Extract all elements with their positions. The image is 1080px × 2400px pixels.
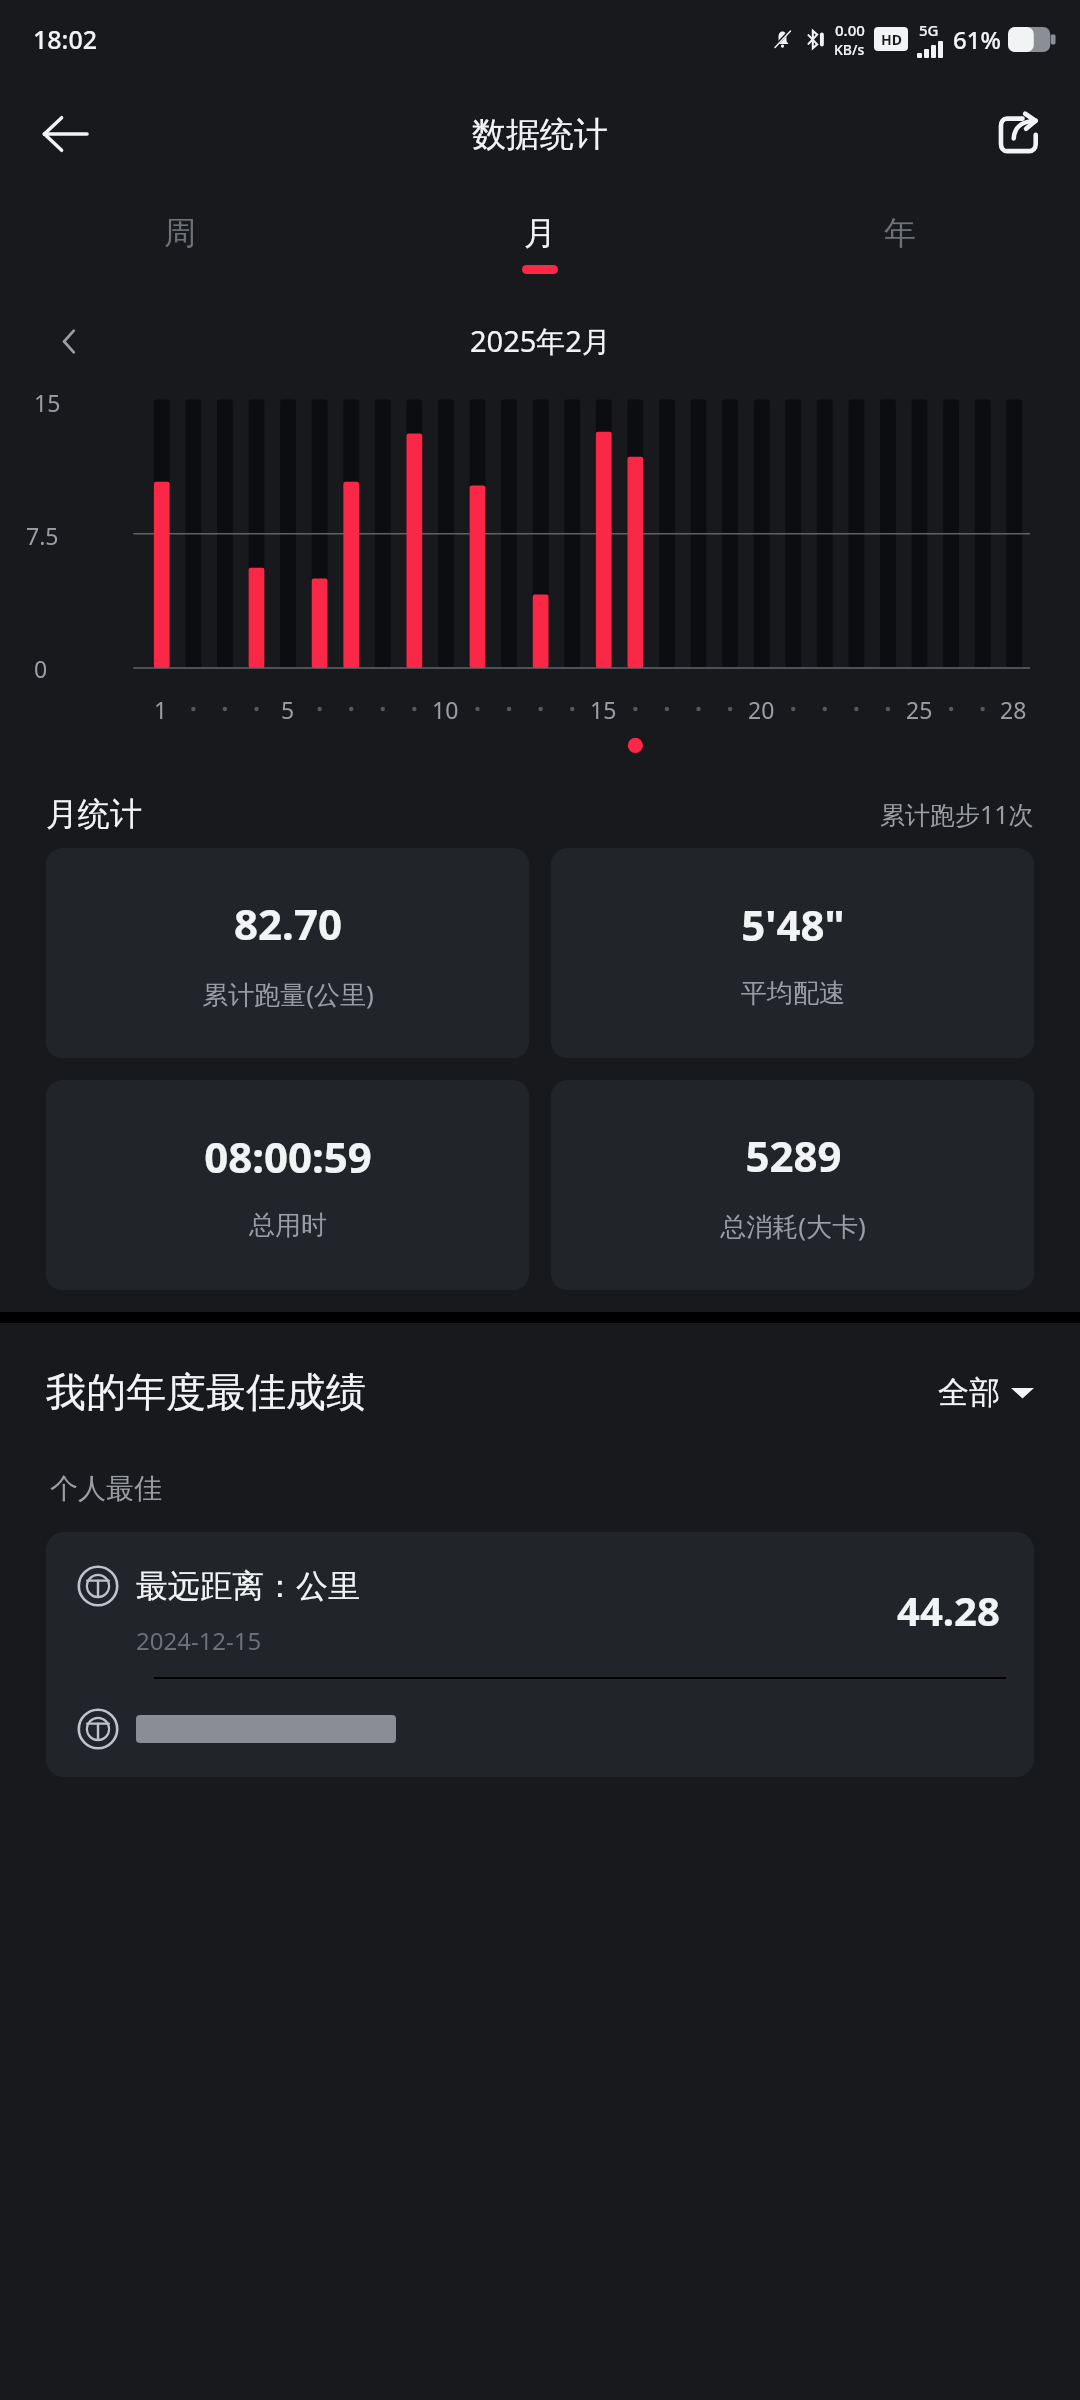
staticText: 5G: [919, 20, 939, 40]
staticText: 数据统计: [472, 113, 608, 156]
staticText: 44.28: [897, 1583, 1000, 1637]
staticText: 累计跑步11次: [880, 797, 1034, 831]
staticText: 15: [590, 694, 617, 725]
staticText: 2024-12-15: [136, 1624, 262, 1657]
staticText: 月: [524, 213, 556, 253]
staticText: 个人最佳: [50, 1471, 162, 1506]
staticText: 月统计: [46, 794, 142, 834]
button[interactable]: Previous month: [38, 310, 100, 372]
staticText: 周: [164, 213, 196, 253]
staticText: 2025年2月: [470, 321, 611, 361]
staticText: 82.70: [234, 895, 342, 952]
staticText: 08:00:59: [204, 1128, 372, 1185]
button[interactable]: Share: [982, 97, 1056, 171]
staticText: 总用时: [249, 1209, 327, 1242]
staticText: 28: [1000, 694, 1027, 725]
staticText: 累计跑量(公里): [202, 976, 374, 1012]
staticText: 平均配速: [741, 977, 845, 1010]
staticText: 7.5: [26, 520, 59, 551]
staticText: 0.00: [835, 20, 865, 40]
button[interactable]: 82.70: [46, 848, 529, 1058]
staticText: 最远距离：公里: [136, 1566, 360, 1606]
staticText: 1: [154, 694, 168, 725]
button[interactable]: 年: [720, 190, 1080, 296]
staticText: HD: [881, 30, 902, 49]
button[interactable]: 5'48": [551, 848, 1034, 1058]
staticText: 5289: [745, 1127, 842, 1184]
staticText: 25: [906, 694, 933, 725]
staticText: 全部: [938, 1373, 1000, 1412]
staticText: 总消耗(大卡): [720, 1208, 866, 1244]
staticText: 0: [34, 653, 48, 684]
staticText: 5: [281, 694, 295, 725]
staticText: 15: [34, 387, 61, 418]
staticText: 年: [884, 213, 916, 253]
staticText: 61%: [953, 23, 1001, 56]
staticText: 5'48": [741, 896, 845, 953]
button[interactable]: 5289: [551, 1080, 1034, 1290]
staticText: 18:02: [33, 22, 98, 56]
button[interactable]: 08:00:59: [46, 1080, 529, 1290]
button[interactable]: Back: [26, 95, 104, 173]
button[interactable]: 全部: [938, 1373, 1034, 1412]
button[interactable]: 月: [360, 190, 720, 296]
staticText: 我的年度最佳成绩: [46, 1367, 366, 1417]
staticText: 20: [748, 694, 775, 725]
button[interactable]: 周: [0, 190, 360, 296]
staticText: KB/s: [834, 40, 865, 59]
staticText: 10: [432, 694, 459, 725]
button[interactable]: 最远距离：公里: [46, 1532, 1034, 1677]
